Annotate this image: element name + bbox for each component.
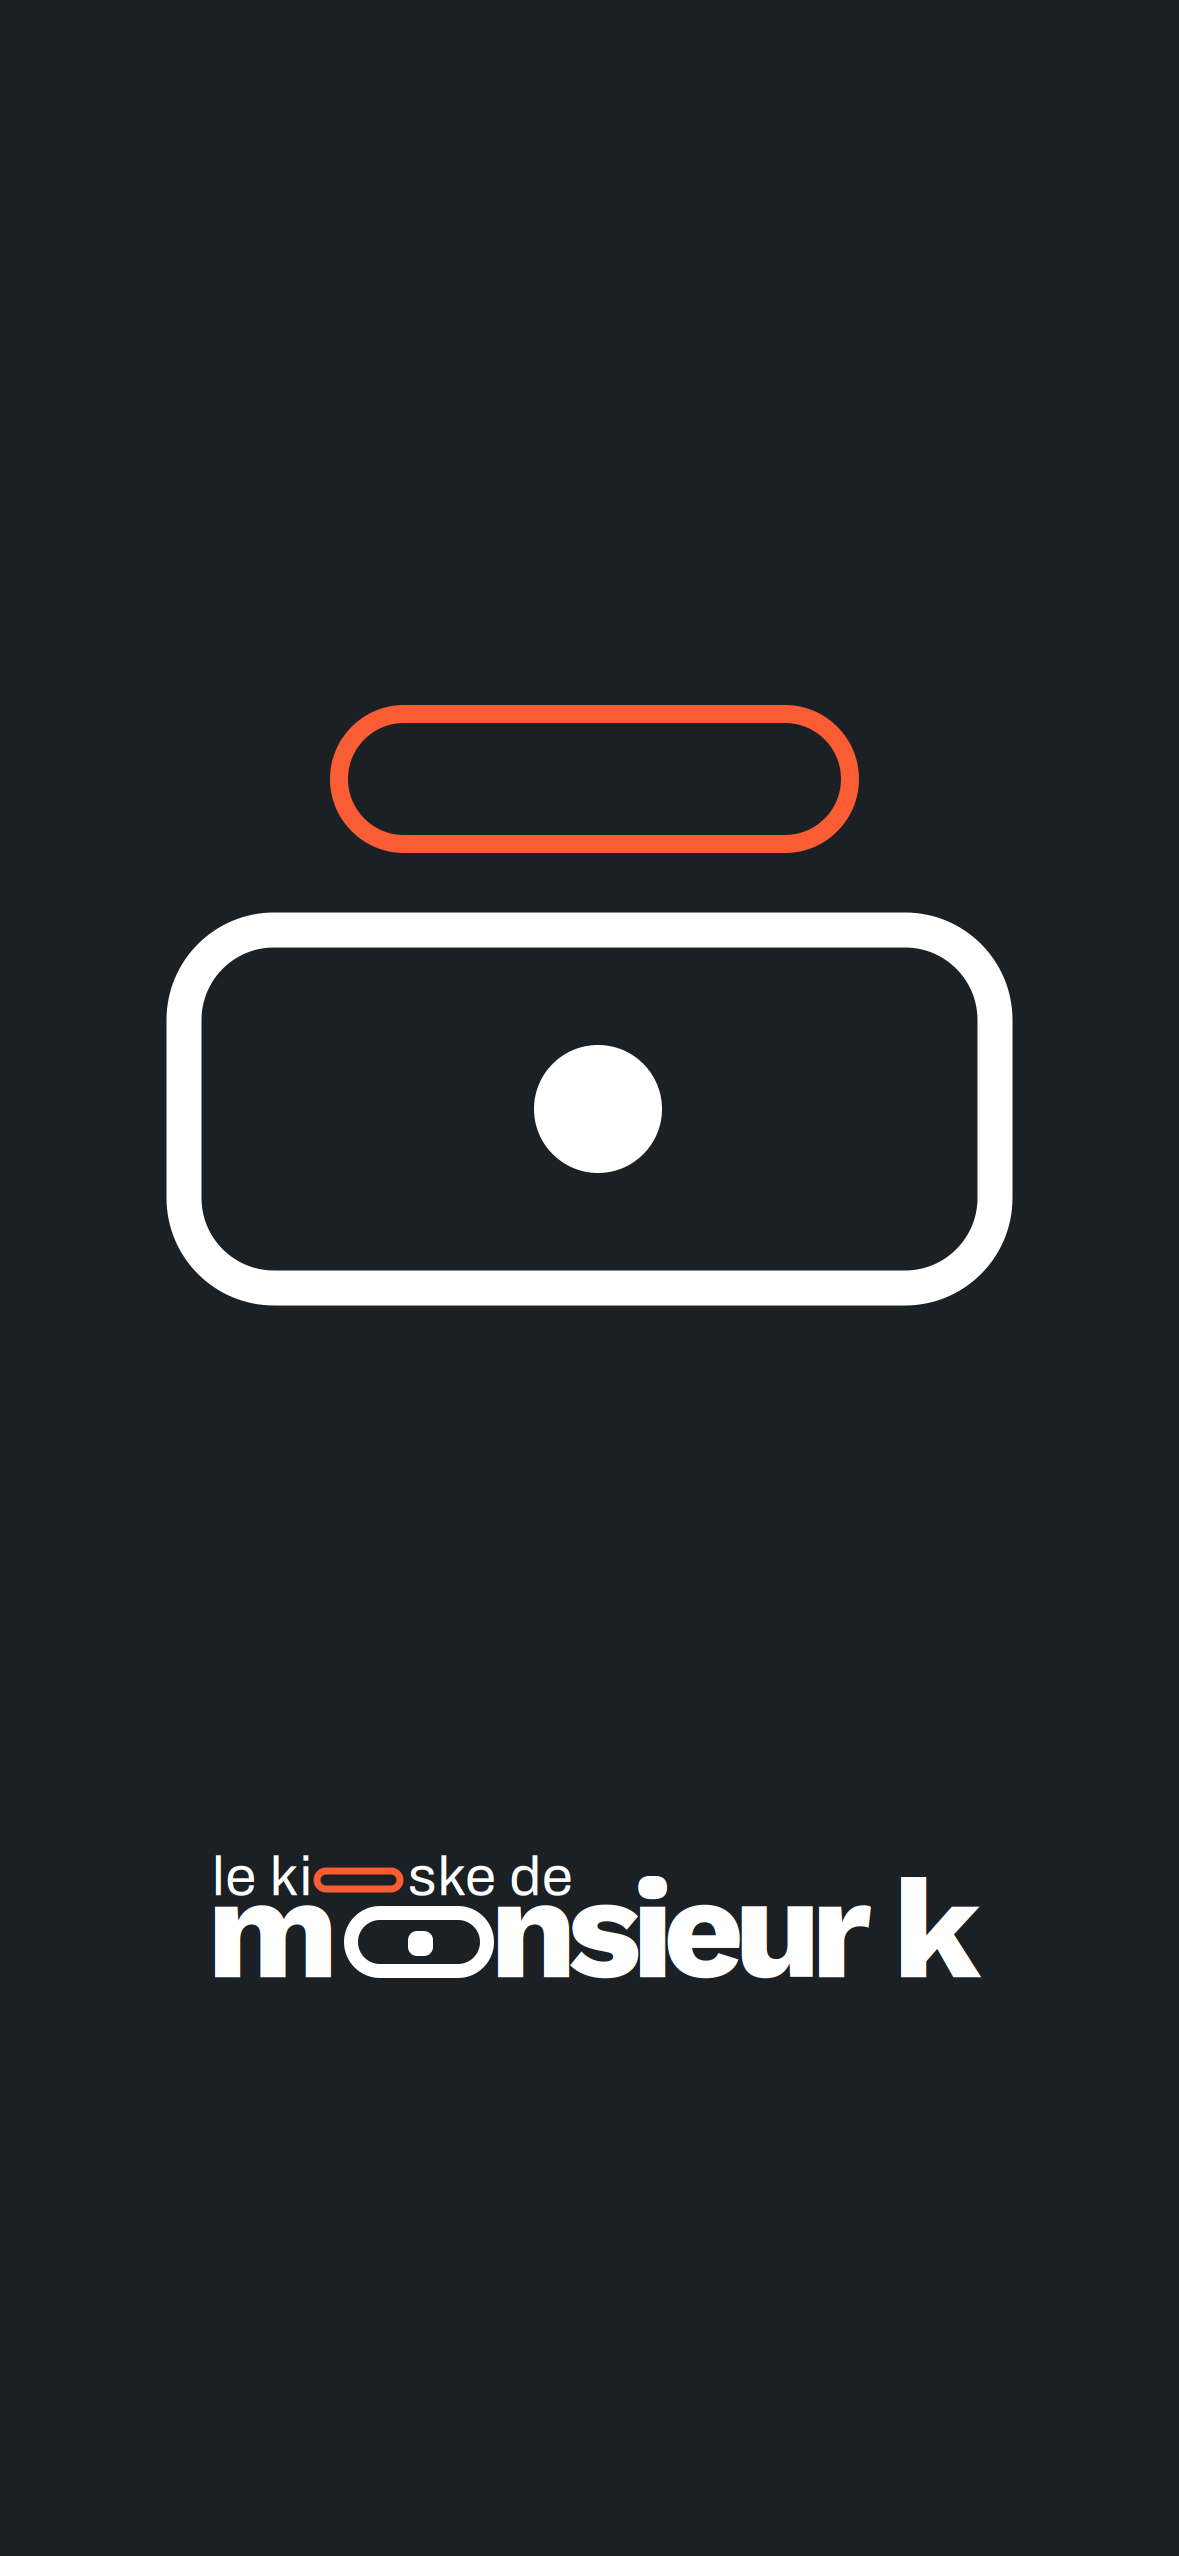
staticText: nsieur (490, 1847, 871, 2011)
staticText: le ki (212, 1846, 312, 1907)
staticText: m (207, 1847, 339, 2011)
staticText: ske de (408, 1846, 573, 1907)
staticText: k (893, 1847, 981, 2011)
